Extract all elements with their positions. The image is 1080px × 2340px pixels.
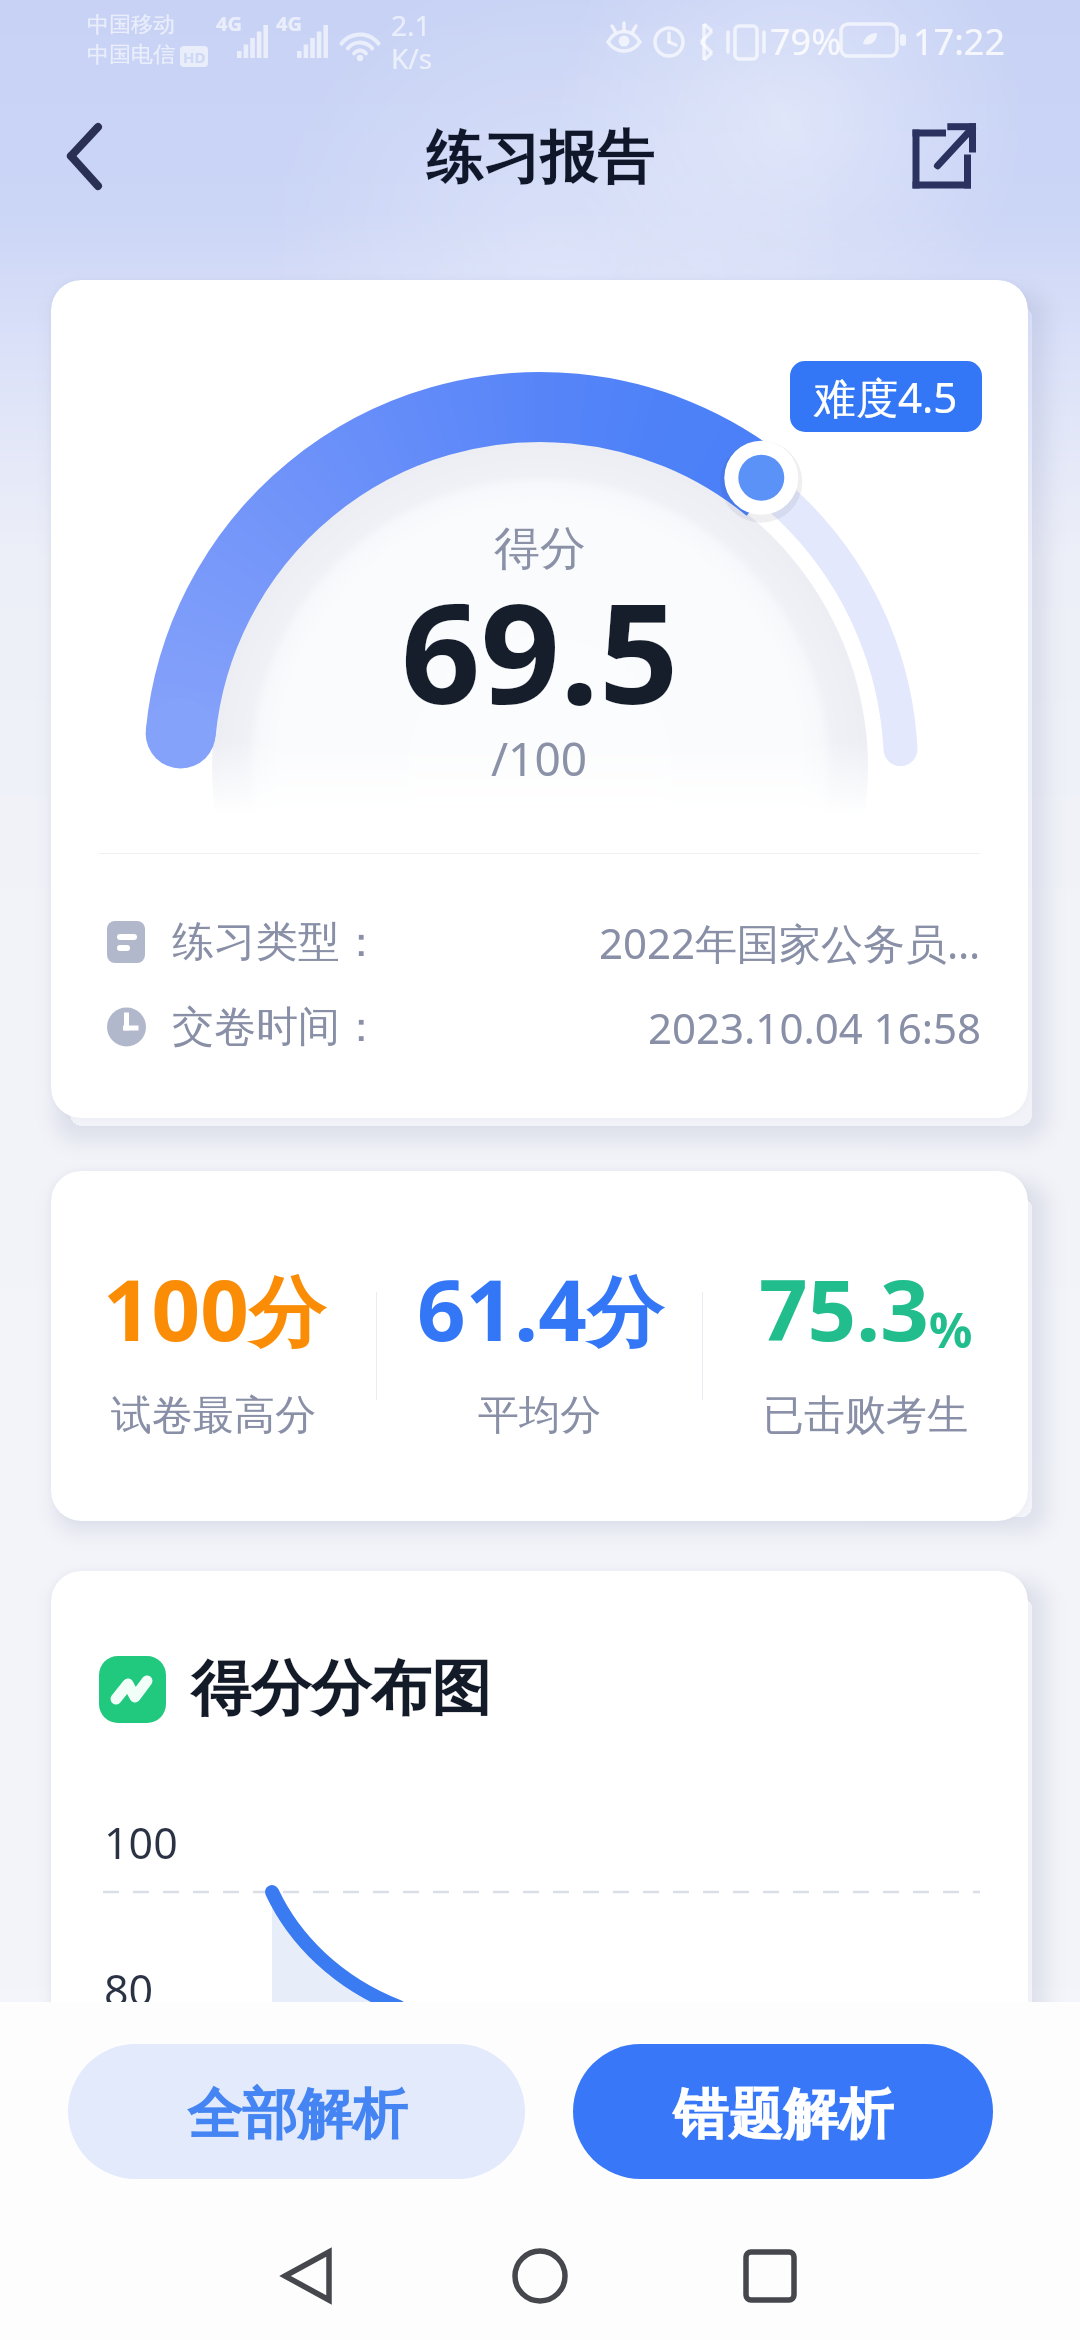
button[interactable]: Share [893, 100, 993, 200]
button[interactable]: Back [0, 2190, 360, 2340]
staticText: 难度4.5 [814, 368, 958, 425]
staticText: 练习类型： [172, 916, 382, 969]
staticText: 平均分 [478, 1390, 601, 1442]
staticText: 100 [103, 1250, 249, 1366]
staticText: 17:22 [913, 17, 1006, 66]
staticText: 分 [249, 1266, 325, 1362]
button[interactable]: Back [28, 100, 138, 210]
staticText: 100 [104, 1813, 178, 1872]
staticText: 2022年国家公务员… [599, 914, 981, 971]
staticText: 练习报告 [426, 122, 654, 194]
staticText: 69.5 [401, 555, 679, 744]
staticText: 试卷最高分 [111, 1390, 316, 1442]
staticText: 79% [770, 17, 842, 66]
button[interactable]: 错题解析 [573, 2044, 993, 2179]
staticText: 75.3 [759, 1250, 929, 1366]
staticText: 2023.10.04 16:58 [648, 999, 981, 1056]
staticText: % [929, 1297, 973, 1362]
staticText: K/s [391, 39, 433, 77]
staticText: 交卷时间： [172, 1001, 382, 1054]
staticText: 已击败考生 [763, 1390, 968, 1442]
staticText: 全部解析 [187, 2080, 407, 2149]
staticText: 分 [587, 1266, 663, 1362]
staticText: /100 [491, 727, 588, 790]
staticText: 80 [104, 1960, 154, 2019]
staticText: 错题解析 [673, 2080, 893, 2149]
staticText: 中国移动 [87, 11, 175, 39]
staticText: 2.1 [391, 6, 431, 44]
staticText: 中国电信 [87, 41, 175, 69]
staticText: 4G [216, 10, 242, 37]
staticText: HD [183, 47, 206, 67]
staticText: 得分分布图 [191, 1651, 491, 1727]
button[interactable]: Home [360, 2190, 720, 2340]
staticText: 61.4 [417, 1250, 587, 1366]
button[interactable]: 全部解析 [68, 2044, 525, 2179]
staticText: 得分 [494, 520, 586, 578]
button[interactable]: Recent apps [720, 2190, 1080, 2340]
staticText: 4G [276, 10, 302, 37]
